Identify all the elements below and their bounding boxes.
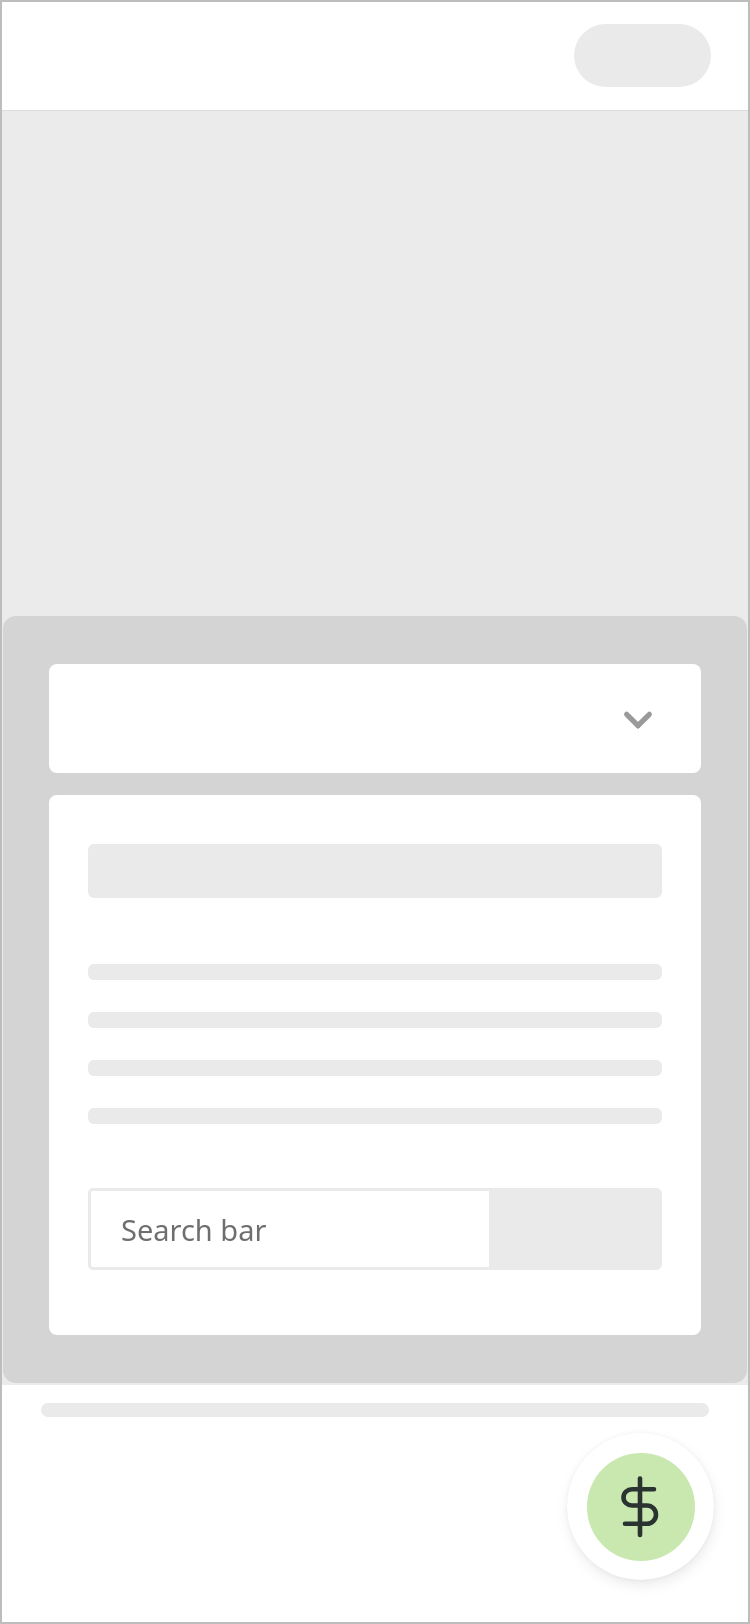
button[interactable]: Add payment	[567, 1433, 714, 1580]
button[interactable]: Account	[574, 24, 711, 87]
button[interactable]: Expand	[49, 664, 701, 773]
staticText: Search bar	[121, 1210, 267, 1249]
button[interactable]: Search bar	[88, 1188, 492, 1270]
